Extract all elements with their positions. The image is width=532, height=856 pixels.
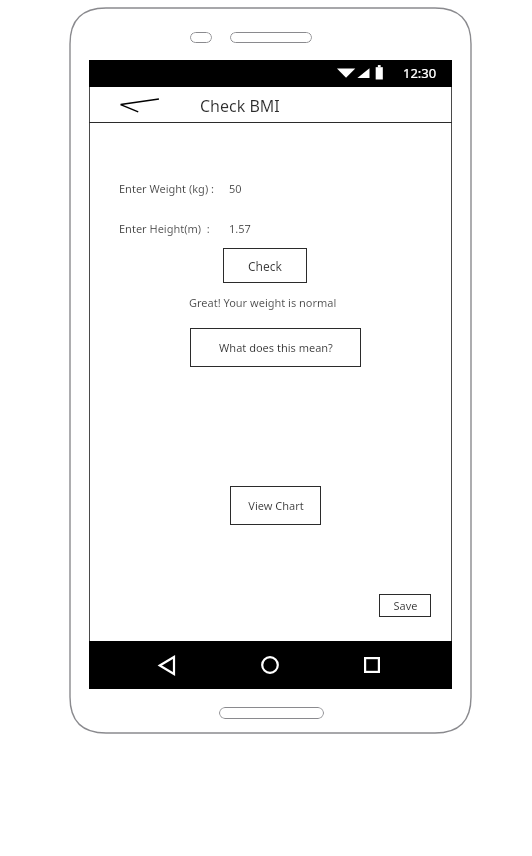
staticText: Check [248, 258, 282, 274]
staticText: Save [393, 598, 418, 613]
staticText: 12:30 [403, 64, 437, 82]
staticText: Enter Weight (kg) : [119, 181, 214, 196]
staticText: View Chart [248, 498, 304, 513]
staticText: What does this mean? [219, 340, 333, 355]
staticText: Enter Height(m) : [119, 221, 210, 236]
button[interactable]: Home [252, 652, 288, 678]
button[interactable]: What does this mean? [190, 328, 361, 367]
button[interactable]: View Chart [230, 486, 321, 525]
button[interactable]: Back [118, 90, 162, 118]
button[interactable]: Back [148, 652, 184, 678]
staticText: 50 [229, 181, 242, 196]
staticText: Check BMI [200, 95, 280, 117]
staticText: Great! Your weight is normal [189, 295, 337, 310]
button[interactable]: Recent apps [354, 652, 390, 678]
button[interactable]: Save [379, 594, 431, 617]
button[interactable]: Check [223, 248, 307, 283]
staticText: 1.57 [229, 221, 251, 236]
